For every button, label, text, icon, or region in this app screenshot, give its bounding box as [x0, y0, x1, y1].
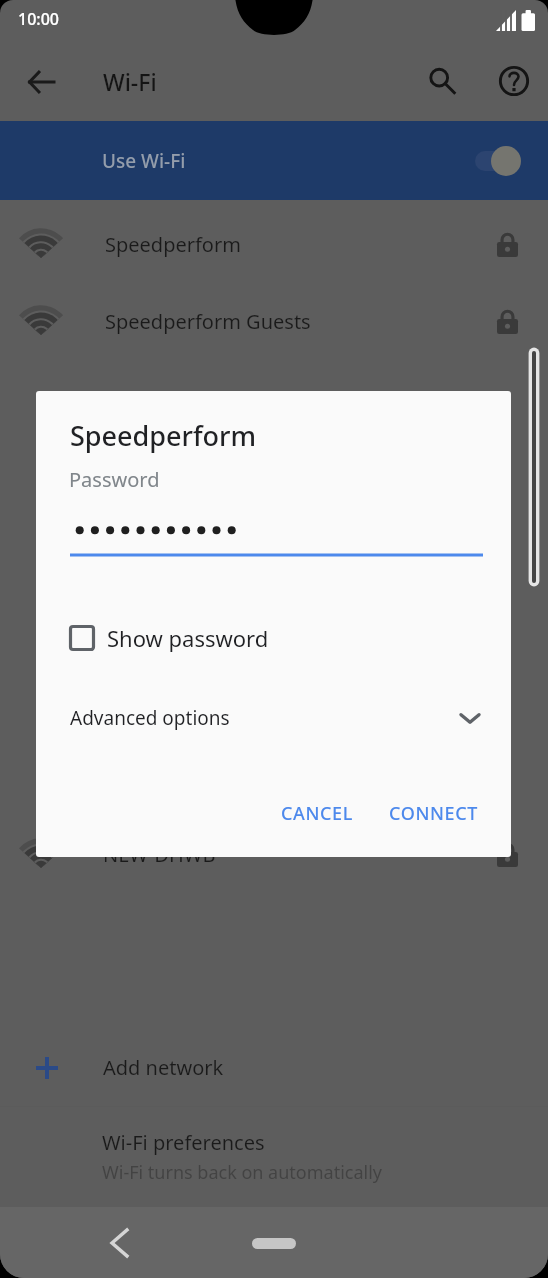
staticText: Speedperform Guests	[105, 308, 311, 335]
button[interactable]: Back	[16, 57, 65, 106]
button[interactable]: Help	[489, 56, 538, 105]
button[interactable]: CONNECT	[377, 792, 490, 835]
button[interactable]: Wi-Fi preferences	[0, 1107, 548, 1199]
button[interactable]: CANCEL	[269, 792, 365, 835]
staticText: Wi-Fi preferences	[102, 1129, 265, 1156]
button[interactable]: Speedperform	[0, 206, 548, 283]
staticText: Wi-Fi turns back on automatically	[102, 1160, 383, 1185]
staticText: Show password	[107, 623, 269, 653]
staticText: Password	[69, 466, 160, 493]
staticText: Add network	[103, 1054, 224, 1081]
button[interactable]: NEW-DHWB	[0, 816, 548, 893]
button[interactable]: Add network	[0, 1029, 548, 1106]
staticText: Speedperform	[105, 231, 241, 258]
button[interactable]: Speedperform Guests	[0, 283, 548, 360]
button[interactable]: Show password	[69, 616, 269, 660]
staticText: Use Wi-Fi	[102, 148, 186, 174]
button[interactable]: Home	[252, 1238, 296, 1249]
button[interactable]: Back	[95, 1219, 143, 1267]
staticText: CANCEL	[281, 801, 353, 826]
button[interactable]: Use Wi-Fi	[0, 121, 548, 200]
button[interactable]: Search	[417, 56, 466, 105]
staticText: Advanced options	[70, 705, 230, 731]
staticText: NEW-DHWB	[103, 841, 216, 868]
staticText: 10:00	[18, 8, 59, 30]
button[interactable]: Advanced options	[36, 696, 511, 740]
staticText: Wi-Fi	[103, 66, 157, 97]
staticText: CONNECT	[389, 801, 478, 826]
staticText: Speedperform	[70, 417, 257, 454]
